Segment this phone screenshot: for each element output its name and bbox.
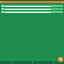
button[interactable]: Home: [0, 61, 22, 64]
button[interactable]: Add: [58, 57, 63, 62]
button[interactable]: Profile: [43, 61, 64, 64]
button[interactable]: [1, 5, 63, 7]
button[interactable]: [1, 11, 63, 13]
button[interactable]: Menu: [0, 1, 64, 3]
button[interactable]: [1, 8, 63, 10]
button[interactable]: Explore: [22, 61, 43, 64]
button[interactable]: Search: [62, 1, 64, 3]
